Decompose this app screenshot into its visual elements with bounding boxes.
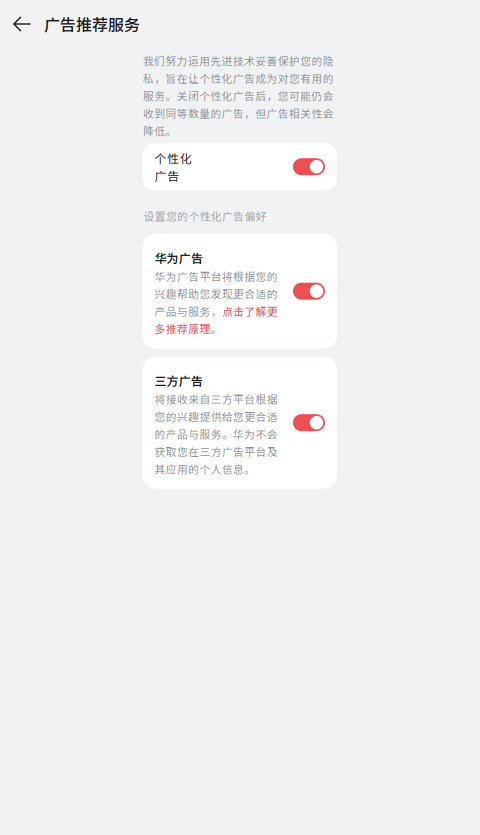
staticText: 将接收来自三方平台根据您的兴趣提供给您更合适的产品与服务。华为不会获取您在三方广… [154,391,278,476]
button[interactable]: 三方广告 [142,357,337,489]
staticText: 三方广告 [154,372,203,389]
button[interactable]: 广告推荐服务 [35,12,140,36]
staticText: 广告推荐服务 [44,12,140,36]
staticText: 华为广告 [154,249,203,266]
button[interactable]: 个性化广告 [142,143,337,190]
staticText: 设置您的个性化广告偏好 [143,208,267,224]
staticText: 我们努力运用先进技术妥善保护您的隐私，旨在让个性化广告成为对您有用的服务。关闭个… [143,53,334,138]
staticText: 个性化广告 [154,149,205,184]
button[interactable]: Back [9,7,35,41]
button[interactable]: 华为广告 [142,234,337,349]
staticText: 华为广告平台将根据您的兴趣帮助您发现更合适的产品与服务，点击了解更多推荐原理。 [154,268,278,336]
